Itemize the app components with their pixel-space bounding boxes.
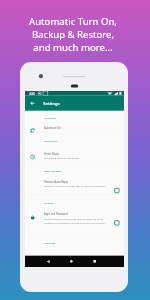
button[interactable]: Home (66, 256, 77, 267)
staticText: Customize the auto reply time. (44, 157, 80, 160)
button[interactable]: Navigate up (28, 98, 38, 108)
staticText: Automatic On (44, 126, 61, 130)
staticText: Remove Auto Reply (44, 180, 68, 184)
staticText: Settings (43, 100, 60, 106)
button[interactable]: Back (42, 256, 54, 267)
button[interactable]: Remove Auto Reply (112, 186, 121, 195)
staticText: Remove Auto Reply header text in the rep… (44, 185, 106, 188)
staticText: Automatic Turn On, Backup & Restore, and… (2, 15, 144, 54)
staticText: Secure access to WhatsAuto app by using … (44, 217, 107, 225)
staticText: Smart Reply (44, 152, 59, 156)
staticText: Automatic (44, 116, 56, 119)
staticText: Smart Reply (44, 139, 58, 142)
button[interactable]: App Lock Password (112, 218, 121, 227)
button[interactable]: Recent apps (89, 256, 100, 267)
staticText: App Lock Password (44, 213, 68, 216)
staticText: 4:34 (29, 92, 35, 95)
staticText: Reply message (44, 170, 61, 173)
staticText: Security (44, 201, 53, 204)
staticText: Language (44, 241, 56, 245)
